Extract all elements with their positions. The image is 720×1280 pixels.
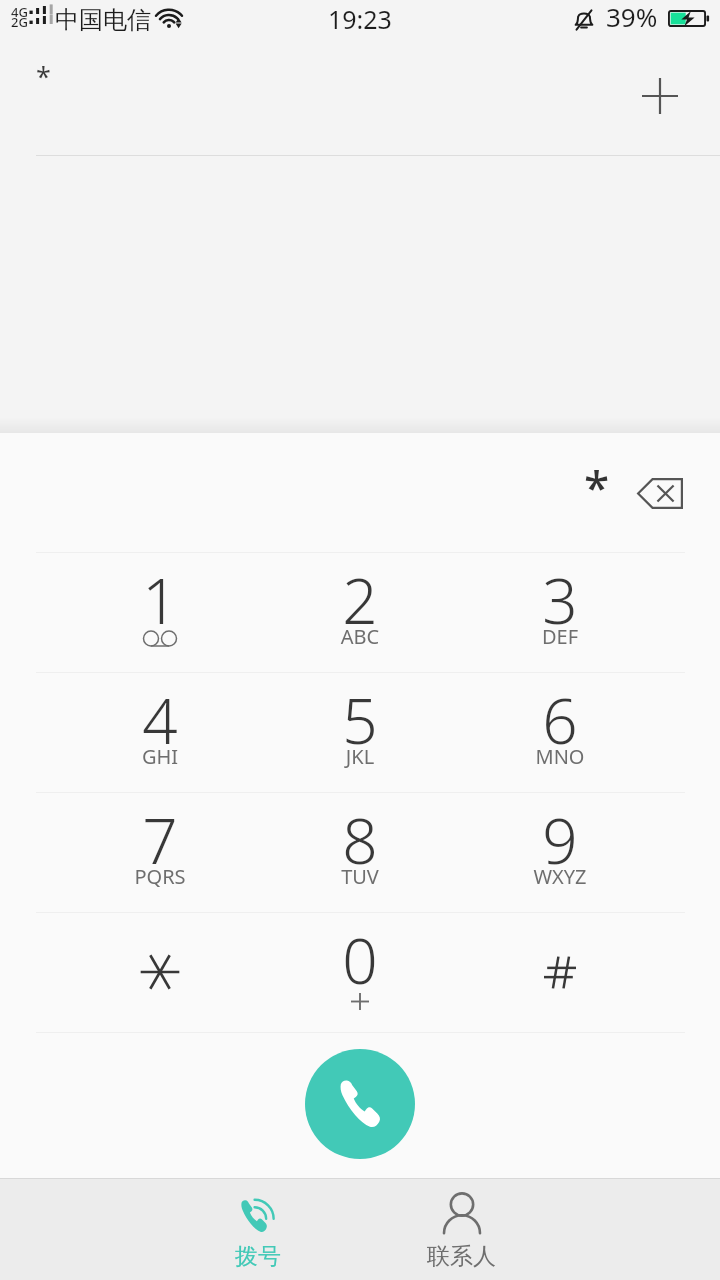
button[interactable]: 4 — [60, 672, 260, 792]
button[interactable]: Add contact — [630, 66, 690, 126]
staticText: 4 — [60, 678, 260, 762]
staticText: ABC — [260, 623, 460, 650]
staticText: PQRS — [60, 863, 260, 890]
staticText: 4G — [11, 3, 28, 19]
staticText: 2G — [11, 13, 28, 29]
staticText: TUV — [260, 863, 460, 890]
staticText: 5 — [260, 678, 460, 762]
staticText: JKL — [260, 743, 460, 770]
staticText: GHI — [60, 743, 260, 770]
staticText: DEF — [460, 623, 660, 650]
button[interactable]: 0 — [260, 912, 460, 1032]
staticText: 8 — [260, 798, 460, 882]
staticText: * — [36, 58, 51, 95]
button[interactable]: 联系人 — [391, 1192, 531, 1280]
button[interactable]: Backspace — [627, 460, 693, 526]
staticText: 6 — [460, 678, 660, 762]
staticText: WXYZ — [460, 863, 660, 890]
button[interactable]: 1 — [60, 552, 260, 672]
staticText: 3 — [460, 558, 660, 642]
button[interactable]: 2 — [260, 552, 460, 672]
staticText: 1 — [60, 558, 260, 642]
button[interactable]: 7 — [60, 792, 260, 912]
button[interactable]: 9 — [460, 792, 660, 912]
button[interactable]: 8 — [260, 792, 460, 912]
button[interactable]: 6 — [460, 672, 660, 792]
button[interactable]: Call — [305, 1049, 415, 1159]
button[interactable]: 3 — [460, 552, 660, 672]
staticText: 中国电信 — [55, 5, 151, 35]
staticText: MNO — [460, 743, 660, 770]
staticText: 联系人 — [427, 1242, 496, 1271]
staticText: 7 — [60, 798, 260, 882]
button[interactable]: 拨号 — [188, 1192, 328, 1280]
staticText: 2 — [260, 558, 460, 642]
button[interactable] — [460, 912, 660, 1032]
staticText: 0 — [260, 918, 460, 1002]
button[interactable]: 5 — [260, 672, 460, 792]
staticText: 39% — [606, 0, 658, 34]
staticText: * — [584, 455, 610, 518]
button[interactable] — [60, 912, 260, 1032]
staticText: 19:23 — [328, 2, 392, 36]
staticText: 拨号 — [235, 1242, 281, 1271]
staticText: 9 — [460, 798, 660, 882]
